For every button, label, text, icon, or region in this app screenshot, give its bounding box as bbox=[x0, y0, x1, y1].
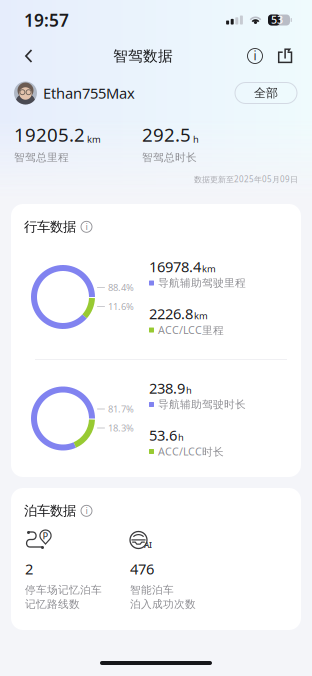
staticText: P bbox=[42, 529, 48, 542]
staticText: 238.9 bbox=[149, 378, 185, 398]
staticText: i bbox=[85, 220, 87, 232]
staticText: 记忆路线数 bbox=[25, 598, 80, 611]
staticText: h bbox=[193, 133, 199, 145]
staticText: 导航辅助驾驶时长 bbox=[158, 398, 246, 411]
staticText: 智驾数据 bbox=[113, 47, 173, 65]
staticText: 19:57 bbox=[24, 8, 69, 31]
staticText: 19205.2 bbox=[14, 122, 85, 147]
staticText: 泊入成功次数 bbox=[130, 598, 196, 611]
staticText: km bbox=[87, 133, 101, 145]
staticText: 11.6% bbox=[108, 300, 134, 313]
staticText: 智能泊车 bbox=[130, 583, 174, 597]
staticText: 泊车数据 bbox=[24, 503, 76, 519]
staticText: 18.3% bbox=[108, 422, 134, 434]
staticText: 476 bbox=[130, 559, 154, 578]
staticText: 81.7% bbox=[108, 403, 134, 415]
staticText: 292.5 bbox=[142, 122, 191, 147]
staticText: ACC/LCC时长 bbox=[158, 444, 224, 459]
staticText: ACC/LCC里程 bbox=[158, 323, 224, 337]
button[interactable]: Share bbox=[270, 40, 300, 72]
staticText: 53.6 bbox=[149, 425, 177, 445]
button[interactable]: Back bbox=[12, 39, 46, 73]
staticText: km bbox=[202, 262, 216, 275]
staticText: i bbox=[253, 47, 256, 63]
staticText: 数据更新至2025年05月09日 bbox=[194, 174, 298, 184]
staticText: 2226.8 bbox=[149, 304, 193, 323]
staticText: Ethan755Max bbox=[43, 83, 135, 103]
staticText: h bbox=[186, 384, 192, 396]
staticText: 导航辅助驾驶里程 bbox=[158, 276, 246, 289]
staticText: 停车场记忆泊车 bbox=[25, 583, 102, 597]
staticText: 53 bbox=[271, 13, 283, 27]
staticText: 2 bbox=[25, 559, 33, 578]
staticText: km bbox=[194, 309, 208, 322]
staticText: h bbox=[178, 431, 184, 443]
staticText: 16978.4 bbox=[149, 257, 201, 276]
staticText: 智驾总时长 bbox=[142, 151, 197, 164]
staticText: 行车数据 bbox=[24, 219, 76, 235]
button[interactable]: Info bbox=[240, 40, 270, 72]
staticText: 智驾总里程 bbox=[14, 151, 69, 164]
staticText: i bbox=[85, 504, 87, 516]
button[interactable]: 全部 bbox=[235, 82, 297, 103]
staticText: 全部 bbox=[254, 86, 278, 100]
staticText: 88.4% bbox=[108, 281, 134, 294]
staticText: AI bbox=[144, 540, 152, 550]
